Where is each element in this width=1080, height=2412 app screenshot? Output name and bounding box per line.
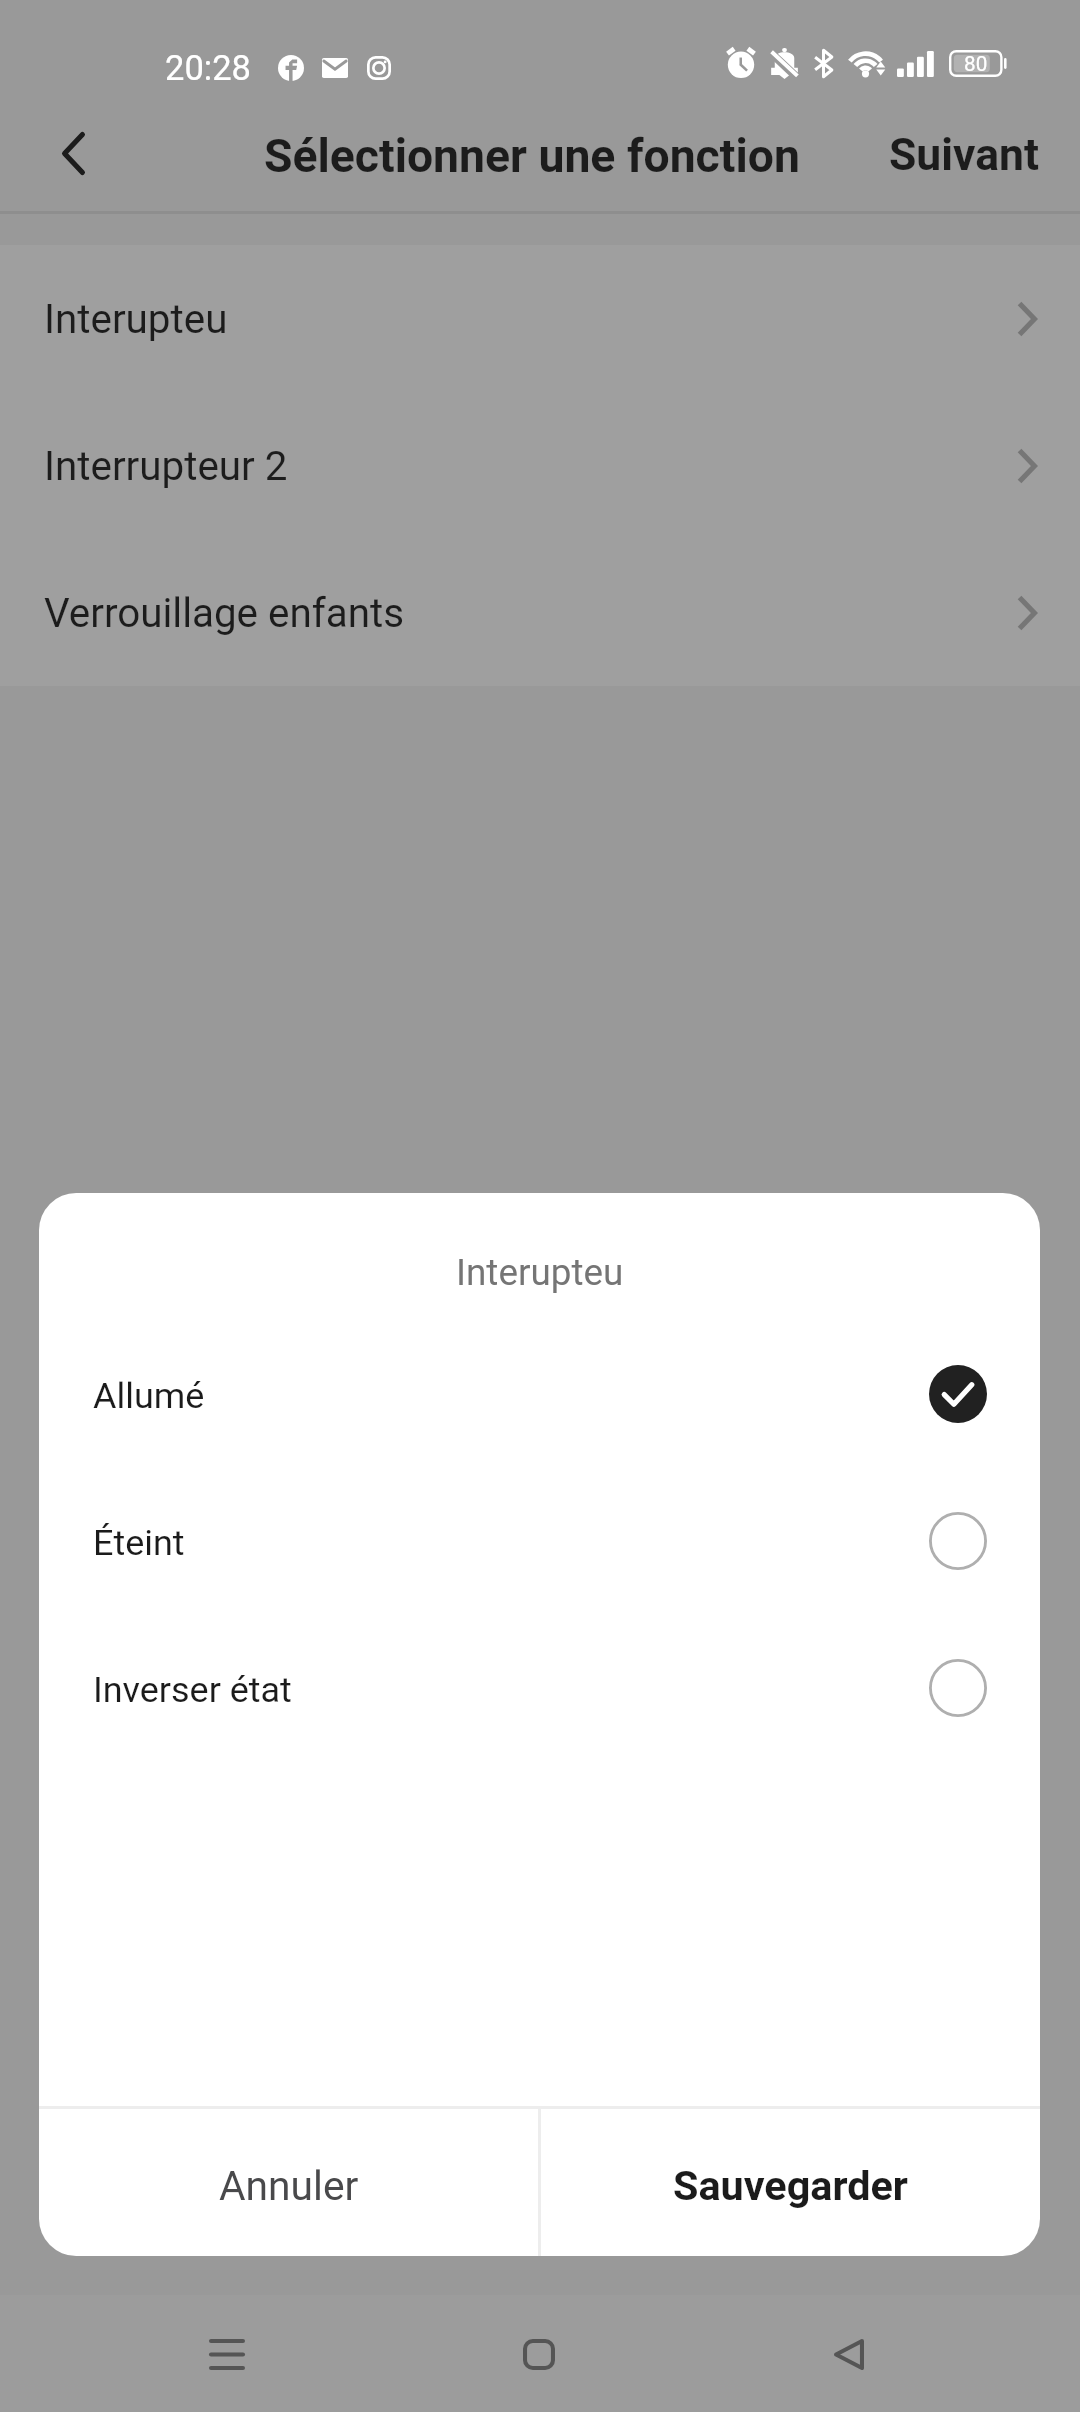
staticText: Sauvegarder xyxy=(673,2162,908,2210)
button[interactable]: Annuler xyxy=(39,2109,538,2256)
button[interactable]: Interupteu xyxy=(0,245,1080,392)
staticText: Suivant xyxy=(889,129,1039,181)
button[interactable]: Éteint xyxy=(39,1467,1040,1614)
button[interactable]: Recent apps xyxy=(167,2294,287,2412)
button[interactable]: Suivant xyxy=(865,96,1063,214)
staticText: Interupteu xyxy=(456,1251,624,1294)
button[interactable]: Home xyxy=(479,2294,599,2412)
staticText: 80 xyxy=(964,52,988,76)
button[interactable]: Sauvegarder xyxy=(541,2109,1040,2256)
button[interactable]: Allumé xyxy=(39,1320,1040,1467)
staticText: 20:28 xyxy=(165,48,251,88)
staticText: Éteint xyxy=(93,1522,185,1564)
button[interactable]: Interrupteur 2 xyxy=(0,392,1080,539)
staticText: Inverser état xyxy=(93,1669,292,1711)
button[interactable]: Verrouillage enfants xyxy=(0,539,1080,686)
staticText: Verrouillage enfants xyxy=(44,590,405,637)
staticText: Sélectionner une fonction xyxy=(264,129,800,183)
staticText: Interrupteur 2 xyxy=(44,443,288,490)
staticText: Annuler xyxy=(219,2162,359,2210)
staticText: Allumé xyxy=(93,1375,205,1417)
button[interactable]: Back xyxy=(25,105,121,201)
staticText: Interupteu xyxy=(44,296,228,343)
button[interactable]: Inverser état xyxy=(39,1614,1040,1761)
button[interactable]: Back xyxy=(789,2294,909,2412)
